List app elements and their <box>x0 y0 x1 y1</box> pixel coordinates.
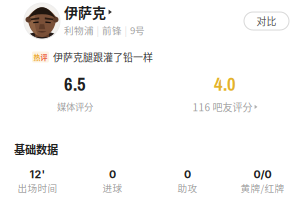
staticText: 伊萨克腿跟灌了铅一样 <box>53 50 153 64</box>
button[interactable]: 伊萨克 <box>64 4 116 20</box>
staticText: 热 <box>33 52 40 62</box>
staticText: 对比 <box>256 14 276 28</box>
staticText: 出场时间 <box>17 181 57 195</box>
staticText: 助攻 <box>177 181 197 195</box>
staticText: 0 <box>184 168 191 181</box>
staticText: 9号 <box>130 23 145 37</box>
staticText: 6.5 <box>64 71 86 97</box>
staticText: 0 <box>109 168 116 181</box>
staticText: 媒体评分 <box>57 100 93 113</box>
staticText: 4.0 <box>214 71 236 97</box>
staticText: 基础数据 <box>14 141 58 157</box>
button[interactable]: 热 <box>32 50 153 64</box>
staticText: 进球 <box>102 181 122 195</box>
staticText: 12' <box>29 168 45 181</box>
staticText: | <box>124 23 127 37</box>
staticText: 伊萨克 <box>64 2 106 22</box>
staticText: 前锋 <box>102 23 122 37</box>
staticText: 评 <box>40 52 47 62</box>
staticText: 116 吧友评分 <box>193 100 253 114</box>
staticText: 0/0 <box>253 168 271 181</box>
staticText: | <box>96 23 99 37</box>
button[interactable]: 4.0 <box>150 71 300 114</box>
staticText: 利物浦 <box>64 23 94 37</box>
button[interactable]: 对比 <box>244 12 289 30</box>
staticText: 黄牌/红牌 <box>240 181 284 195</box>
